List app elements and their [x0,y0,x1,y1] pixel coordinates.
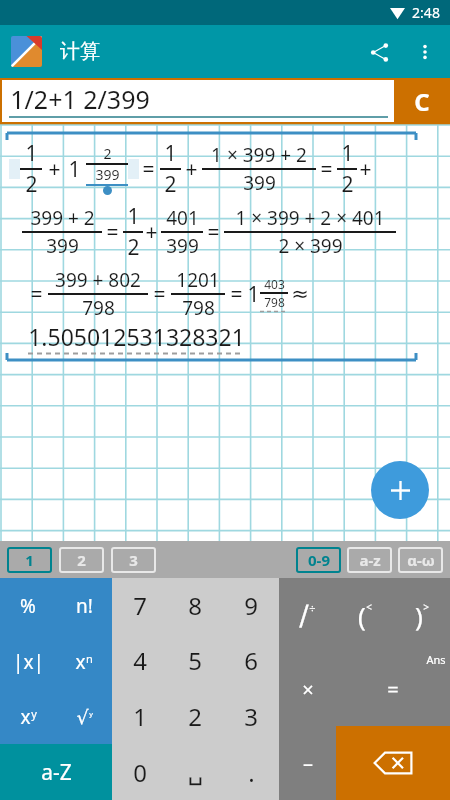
staticText: a-Z [41,758,72,787]
staticText: 1201 [176,267,220,293]
staticText: 7 [133,589,147,622]
staticText: 1 × 399 + 2 × 401 [235,205,385,231]
button[interactable]: 8 [167,578,223,633]
staticText: 计算 [60,39,100,64]
staticText: 403 [264,276,285,292]
button[interactable] [11,36,42,67]
button[interactable]: Add [371,461,429,519]
staticText: |x| [13,649,44,675]
staticText: 9 [244,589,258,622]
button[interactable]: ( [336,578,393,652]
button[interactable]: α-ω [398,547,443,573]
staticText: = [387,676,399,703]
button[interactable]: a-z [347,547,392,573]
button[interactable]: 4 [112,633,167,688]
staticText: 0 [133,756,147,789]
staticText: n [86,651,93,666]
button[interactable]: 7 [112,578,167,633]
button[interactable]: – [279,726,336,800]
button[interactable]: . [223,744,279,800]
button[interactable]: a-Z [0,744,112,800]
button[interactable]: x [56,634,112,689]
button[interactable]: More options [403,30,447,74]
staticText: 2 × 399 [278,233,343,259]
staticText: = [153,280,166,309]
staticText: < [366,600,372,614]
staticText: 0-9 [308,550,330,570]
staticText: 3 [244,700,258,733]
staticText: 1 [341,139,354,168]
staticText: > [423,600,429,614]
button[interactable]: x [0,689,56,744]
staticText: 399 [46,233,79,259]
button[interactable]: Share [355,28,403,76]
staticText: 1 [127,202,140,231]
staticText: ÷ [309,601,316,616]
staticText: y [31,706,37,721]
staticText: 8 [188,589,202,622]
button[interactable]: % [0,578,56,634]
staticText: 1 [25,550,34,570]
button[interactable]: C [394,78,450,125]
button[interactable]: ␣ [167,744,223,800]
staticText: – [303,750,313,777]
staticText: Ans [426,652,446,667]
staticText: 4 [133,644,147,677]
staticText: 1 [164,139,177,168]
button[interactable]: × [279,652,336,726]
staticText: = [230,280,243,309]
button[interactable]: Backspace [336,726,450,800]
button[interactable]: 1 [112,688,167,744]
staticText: 1 [247,280,260,309]
staticText: = [142,155,155,184]
staticText: = [320,155,333,184]
staticText: 5 [188,644,202,677]
staticText: 1/2+1 2/399 [10,82,150,116]
staticText: 399 + 2 [30,205,95,231]
button[interactable]: 5 [167,633,223,688]
staticText: 1 [25,139,38,168]
staticText: 2 [127,233,140,262]
staticText: + [145,218,158,247]
staticText: 6 [244,644,258,677]
staticText: 798 [182,295,215,321]
button[interactable]: 3 [111,547,156,573]
staticText: ␣ [187,758,203,786]
button[interactable]: 0 [112,744,167,800]
staticText: ≈ [291,282,309,306]
staticText: 798 [82,295,115,321]
staticText: 399 + 802 [55,267,141,293]
staticText: + [359,155,372,184]
staticText: 399 [243,170,276,196]
button[interactable]: 1 [7,547,52,573]
button[interactable]: 0-9 [296,547,341,573]
staticText: α-ω [407,550,435,570]
staticText: 798 [264,294,285,310]
staticText: 399 [166,233,199,259]
staticText: 2 [164,170,177,199]
button[interactable]: √ [56,689,112,744]
staticText: 3 [129,550,138,570]
button[interactable]: 2 [59,547,104,573]
staticText: n! [76,593,93,619]
button[interactable]: 6 [223,633,279,688]
button[interactable]: ) [393,578,450,652]
button[interactable]: ∕ [279,578,336,652]
staticText: 2:48 [412,3,440,22]
button[interactable]: n! [56,578,112,634]
button[interactable]: |x| [0,634,56,689]
staticText: a-z [359,550,381,570]
staticText: 2 [188,700,202,733]
staticText: 2 [77,550,86,570]
button[interactable]: = [336,652,450,726]
button[interactable]: 3 [223,688,279,744]
staticText: 2 [341,170,354,199]
staticText: √ [76,706,89,728]
staticText: C [414,85,430,118]
staticText: 2 [25,170,38,199]
staticText: 399 [95,165,120,184]
button[interactable]: 1/2+1 2/399 [2,80,394,122]
staticText: . [248,756,255,789]
button[interactable]: 9 [223,578,279,633]
button[interactable]: 2 [167,688,223,744]
